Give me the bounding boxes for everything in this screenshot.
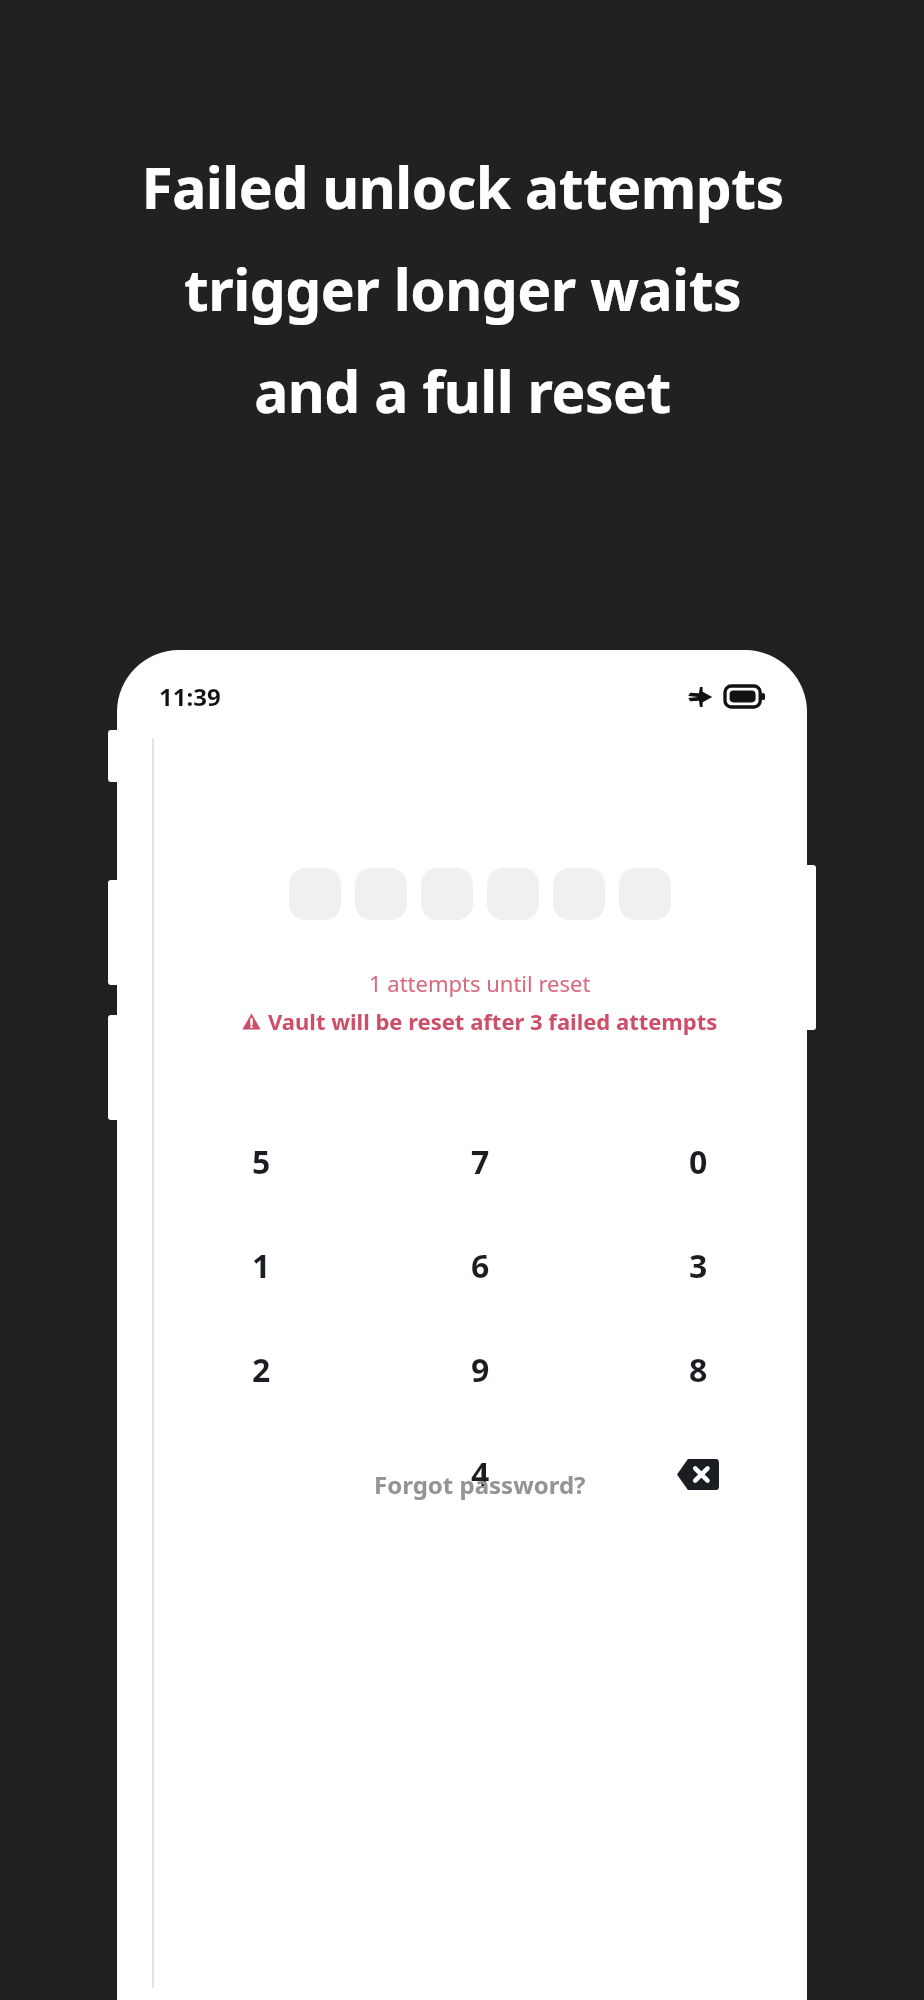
button[interactable]: 0 [589, 1110, 807, 1214]
button[interactable]: 6 [371, 1214, 589, 1318]
button[interactable]: 2 [152, 1318, 371, 1422]
staticText: trigger longer waits [184, 250, 741, 328]
staticText: 1 [252, 1244, 271, 1288]
staticText: Vault will be reset after 3 failed attem… [268, 1006, 718, 1036]
button[interactable]: 9 [371, 1318, 589, 1422]
staticText: 1 attempts until reset [369, 968, 591, 998]
button[interactable]: 3 [589, 1214, 807, 1318]
button[interactable]: Forgot password? [362, 1462, 598, 1507]
staticText: and a full reset [254, 352, 671, 430]
staticText: 2 [252, 1348, 271, 1392]
button[interactable]: Backspace [589, 1422, 807, 1526]
button[interactable]: 1 [152, 1214, 371, 1318]
staticText: 6 [471, 1244, 490, 1288]
staticText: Forgot password? [374, 1468, 586, 1501]
staticText: 8 [689, 1348, 708, 1392]
staticText: 0 [689, 1140, 708, 1184]
button[interactable]: 4 [371, 1422, 589, 1526]
button[interactable]: 5 [152, 1110, 371, 1214]
staticText: 9 [471, 1348, 490, 1392]
staticText: 7 [471, 1140, 490, 1184]
staticText: Failed unlock attempts [141, 148, 784, 226]
button[interactable]: 7 [371, 1110, 589, 1214]
staticText: 3 [689, 1244, 708, 1288]
staticText: 5 [252, 1140, 271, 1184]
staticText: 11:39 [159, 680, 221, 713]
staticText: 4 [471, 1452, 490, 1496]
button[interactable]: 8 [589, 1318, 807, 1422]
